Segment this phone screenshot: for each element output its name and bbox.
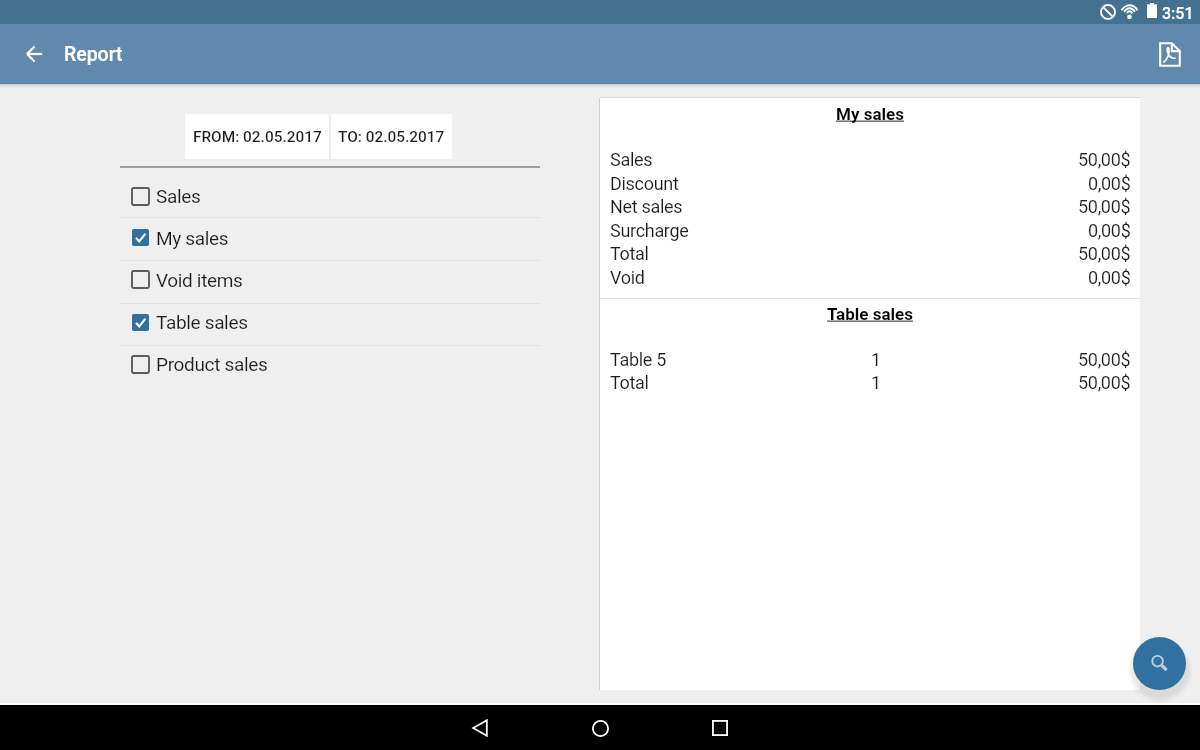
button[interactable]: FROM: 02.05.2017 — [185, 114, 329, 159]
staticText: Discount — [610, 173, 679, 194]
staticText: Total — [610, 243, 649, 264]
button[interactable]: Product sales — [120, 347, 540, 388]
staticText: Table 5 — [610, 349, 667, 370]
staticText: Surcharge — [610, 220, 689, 241]
button[interactable]: Void items — [120, 262, 540, 302]
staticText: Report — [64, 43, 123, 66]
staticText: TO: 02.05.2017 — [338, 128, 445, 146]
staticText: My sales — [836, 104, 904, 124]
button[interactable]: Search — [1133, 637, 1186, 690]
staticText: 50,00$ — [1078, 372, 1131, 393]
button[interactable]: Export to PDF — [1148, 32, 1192, 76]
staticText: Product sales — [156, 353, 268, 375]
staticText: Sales — [156, 185, 201, 207]
staticText: My sales — [156, 227, 229, 249]
staticText: FROM: 02.05.2017 — [193, 128, 322, 146]
staticText: Total — [610, 372, 649, 393]
staticText: 50,00$ — [1078, 349, 1131, 370]
staticText: 1 — [861, 349, 891, 370]
staticText: Net sales — [610, 196, 683, 217]
staticText: Void items — [156, 269, 243, 291]
staticText: Table sales — [156, 311, 248, 333]
staticText: 50,00$ — [1078, 243, 1131, 264]
staticText: 1 — [861, 372, 891, 393]
staticText: 0,00$ — [1088, 220, 1131, 241]
staticText: 0,00$ — [1088, 173, 1131, 194]
staticText: 50,00$ — [1078, 196, 1131, 217]
staticText: Void — [610, 267, 645, 288]
staticText: 3:51 — [1162, 4, 1194, 23]
staticText: 50,00$ — [1078, 149, 1131, 170]
button[interactable]: Recent apps — [698, 706, 742, 750]
button[interactable]: Table sales — [120, 305, 540, 346]
staticText: 0,00$ — [1088, 267, 1131, 288]
button[interactable]: My sales — [120, 219, 540, 260]
button[interactable]: Home — [578, 706, 622, 750]
button[interactable]: Sales — [120, 169, 540, 217]
button[interactable]: Navigate up — [15, 35, 53, 73]
staticText: Table sales — [827, 304, 914, 324]
button[interactable]: TO: 02.05.2017 — [331, 114, 452, 159]
staticText: Sales — [610, 149, 653, 170]
button[interactable]: Back — [458, 706, 502, 750]
